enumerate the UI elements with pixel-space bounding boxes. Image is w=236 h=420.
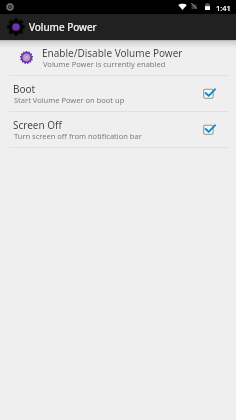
button[interactable]: Boot xyxy=(0,76,236,112)
staticText: Volume Power is currently enabled xyxy=(43,59,166,69)
staticText: 1:41 xyxy=(216,3,231,13)
staticText: Volume Power xyxy=(29,20,97,34)
staticText: Boot xyxy=(13,82,36,96)
staticText: Turn screen off from notification bar xyxy=(14,131,142,141)
other: Wi-Fi xyxy=(178,3,187,10)
button[interactable]: Toggle checkbox xyxy=(197,80,223,108)
staticText: Enable/Disable Volume Power xyxy=(42,46,183,60)
other: No SIM card xyxy=(191,3,197,9)
other: Battery xyxy=(205,3,210,10)
button[interactable]: App icon xyxy=(0,14,236,40)
button[interactable]: Screen Off xyxy=(0,112,236,148)
staticText: Screen Off xyxy=(13,118,62,132)
button[interactable]: Toggle checkbox xyxy=(197,116,223,144)
button[interactable]: Settings xyxy=(0,40,236,76)
staticText: Start Volume Power on boot up xyxy=(14,95,125,105)
other: Notification xyxy=(6,3,14,11)
other: App icon xyxy=(7,18,25,36)
other: Settings xyxy=(20,51,33,64)
